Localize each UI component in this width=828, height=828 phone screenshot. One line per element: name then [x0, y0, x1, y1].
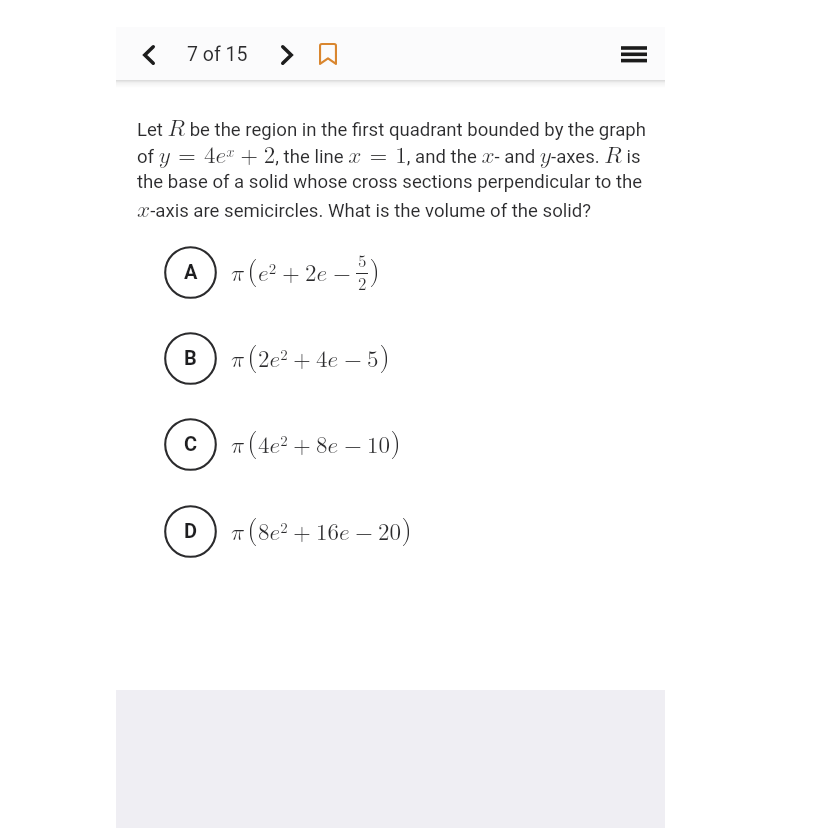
staticText: the base of a solid whose cross sections…	[137, 171, 643, 193]
button[interactable]: B	[164, 332, 644, 385]
button[interactable]: C	[164, 418, 644, 471]
staticText: 4𝑒	[316, 348, 339, 371]
staticText: 𝜋	[231, 521, 245, 544]
staticText: 5	[358, 253, 367, 270]
staticText: 5	[367, 348, 379, 371]
staticText: +	[293, 434, 311, 457]
staticText: C	[184, 432, 198, 455]
staticText: A	[184, 260, 198, 283]
staticText: 8𝑒2	[258, 521, 288, 544]
staticText: −	[344, 348, 362, 371]
staticText: Let 𝑅 be the region in the first quadran…	[137, 117, 647, 140]
staticText: +	[282, 262, 300, 285]
staticText: 8𝑒	[316, 434, 339, 457]
button[interactable]: Previous question	[128, 34, 170, 76]
staticText: −	[333, 262, 351, 285]
staticText: 7 of 15	[187, 43, 248, 66]
button[interactable]: A	[164, 246, 644, 299]
staticText: 20	[378, 521, 401, 544]
staticText: 𝑥-axis are semicircles. What is the volu…	[137, 198, 592, 221]
staticText: 2𝑒	[305, 262, 328, 285]
staticText: 𝜋	[231, 348, 245, 371]
staticText: 𝜋	[231, 434, 245, 457]
staticText: B	[184, 346, 197, 369]
button[interactable]: D	[164, 505, 644, 558]
staticText: 2𝑒2	[258, 348, 288, 371]
staticText: 𝜋	[231, 262, 245, 285]
staticText: of 𝑦 = 4𝑒𝑥 + 2, the line 𝑥 = 1, and the …	[137, 144, 641, 167]
button[interactable]: Bookmark	[308, 27, 348, 80]
staticText: 10	[367, 434, 390, 457]
staticText: +	[293, 348, 311, 371]
staticText: D	[184, 519, 198, 542]
staticText: 𝑒2	[258, 262, 277, 285]
button[interactable]: Next question	[266, 34, 308, 76]
staticText: 16𝑒	[316, 521, 350, 544]
button[interactable]: Menu	[612, 28, 656, 81]
staticText: 2	[358, 276, 367, 293]
staticText: −	[344, 434, 362, 457]
staticText: −	[355, 521, 373, 544]
staticText: +	[293, 521, 311, 544]
staticText: 4𝑒2	[258, 434, 288, 457]
